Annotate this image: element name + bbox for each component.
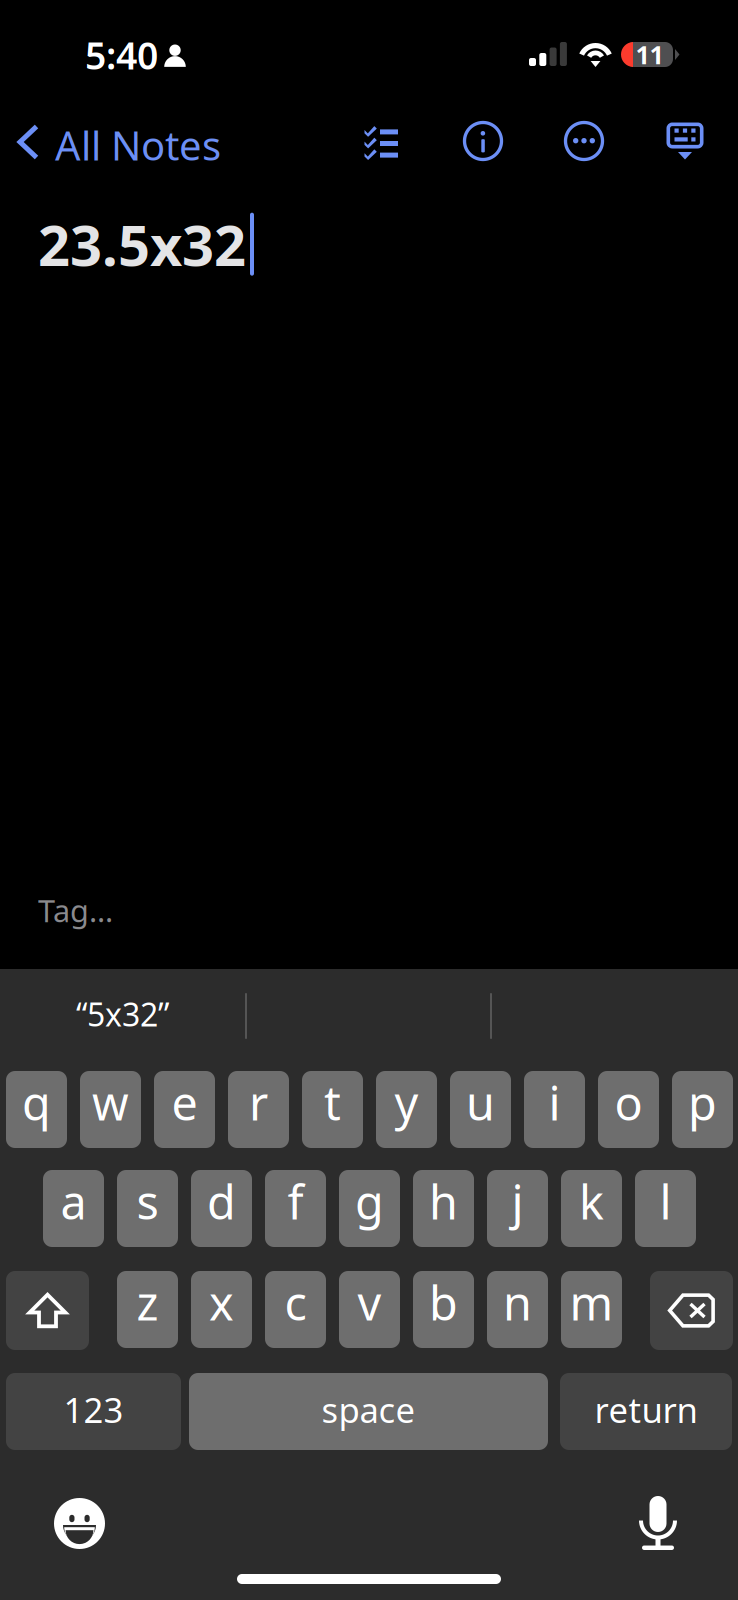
button[interactable]: “5x32” [2, 971, 243, 1057]
staticText: 123 [63, 1386, 123, 1432]
staticText: d [207, 1170, 236, 1232]
staticText: 23.5x32 [38, 207, 246, 281]
button[interactable]: 123 [6, 1373, 181, 1450]
button[interactable]: space [189, 1373, 548, 1450]
button[interactable]: h [413, 1170, 474, 1247]
staticText: t [324, 1071, 341, 1133]
staticText: space [321, 1386, 415, 1432]
button[interactable]: q [6, 1071, 67, 1148]
button[interactable]: Tag... [0, 881, 738, 969]
button[interactable]: a [43, 1170, 104, 1247]
staticText: c [284, 1271, 306, 1333]
button[interactable]: z [117, 1271, 178, 1348]
button[interactable]: Hide Keyboard [658, 114, 712, 168]
button[interactable]: e [154, 1071, 215, 1148]
button[interactable]: s [117, 1170, 178, 1247]
button[interactable]: k [561, 1170, 622, 1247]
staticText: l [659, 1170, 671, 1232]
staticText: i [548, 1071, 560, 1133]
staticText: g [355, 1170, 384, 1232]
staticText: r [249, 1071, 268, 1133]
button[interactable]: Delete [650, 1271, 733, 1350]
staticText: e [171, 1071, 197, 1133]
staticText: j [511, 1170, 523, 1232]
staticText: n [503, 1271, 532, 1333]
staticText: s [136, 1170, 158, 1232]
button[interactable]: Shift [6, 1271, 89, 1350]
button[interactable]: i [524, 1071, 585, 1148]
button[interactable]: 23.5x32 [0, 168, 738, 881]
staticText: return [594, 1386, 697, 1432]
button[interactable]: d [191, 1170, 252, 1247]
button[interactable]: Dictate [635, 1496, 681, 1550]
staticText: All Notes [55, 118, 221, 171]
staticText: h [429, 1170, 458, 1232]
staticText: Tag... [38, 890, 113, 931]
button[interactable]: Checklist [354, 114, 408, 168]
button[interactable]: w [80, 1071, 141, 1148]
staticText: q [22, 1071, 51, 1133]
staticText: x [209, 1271, 234, 1333]
staticText: y [394, 1071, 418, 1133]
button[interactable]: u [450, 1071, 511, 1148]
button[interactable]: y [376, 1071, 437, 1148]
button[interactable]: l [635, 1170, 696, 1247]
staticText: m [569, 1271, 613, 1333]
button[interactable]: m [561, 1271, 622, 1348]
staticText: p [688, 1071, 717, 1133]
button[interactable]: o [598, 1071, 659, 1148]
button[interactable]: v [339, 1271, 400, 1348]
button[interactable]: c [265, 1271, 326, 1348]
staticText: 11 [635, 38, 663, 71]
staticText: f [287, 1170, 303, 1232]
button[interactable]: Info [456, 114, 510, 168]
staticText: u [466, 1071, 495, 1133]
button[interactable]: n [487, 1271, 548, 1348]
button[interactable]: Emoji [54, 1498, 105, 1549]
button[interactable]: b [413, 1271, 474, 1348]
staticText: k [579, 1170, 604, 1232]
button[interactable]: More [557, 114, 611, 168]
staticText: v [357, 1271, 381, 1333]
button[interactable]: return [560, 1373, 732, 1450]
button[interactable]: t [302, 1071, 363, 1148]
staticText: z [136, 1271, 158, 1333]
button[interactable]: x [191, 1271, 252, 1348]
staticText: “5x32” [76, 993, 169, 1035]
staticText: w [92, 1071, 129, 1133]
button[interactable]: p [672, 1071, 733, 1148]
staticText: a [60, 1170, 86, 1232]
button[interactable]: All Notes [0, 114, 210, 168]
staticText: o [614, 1071, 642, 1133]
staticText: 5:40 [85, 30, 158, 80]
button[interactable]: j [487, 1170, 548, 1247]
button[interactable]: f [265, 1170, 326, 1247]
button[interactable]: g [339, 1170, 400, 1247]
staticText: b [429, 1271, 458, 1333]
button[interactable]: r [228, 1071, 289, 1148]
